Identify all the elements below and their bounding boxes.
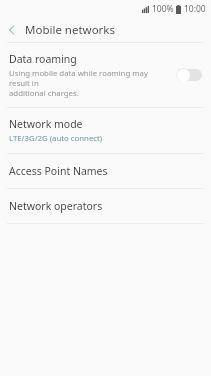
staticText: LTE/3G/2G (auto connect) [9, 133, 103, 144]
staticText: Data roaming [9, 52, 77, 66]
staticText: Network mode [9, 117, 83, 131]
staticText: Mobile networks [25, 22, 116, 38]
staticText: Network operators [9, 199, 103, 213]
staticText: Using mobile data while roaming may resu… [9, 68, 170, 98]
button[interactable]: Access Point Names [0, 154, 211, 188]
button[interactable]: Network mode [0, 108, 211, 153]
button[interactable]: Data roaming [0, 43, 211, 107]
button[interactable]: Network operators [0, 189, 211, 223]
button[interactable]: Data roaming off [176, 67, 202, 83]
staticText: Access Point Names [9, 164, 108, 178]
staticText: 10:00 [184, 3, 206, 15]
button[interactable]: Navigate up [0, 18, 24, 42]
staticText: 100% [152, 3, 174, 15]
